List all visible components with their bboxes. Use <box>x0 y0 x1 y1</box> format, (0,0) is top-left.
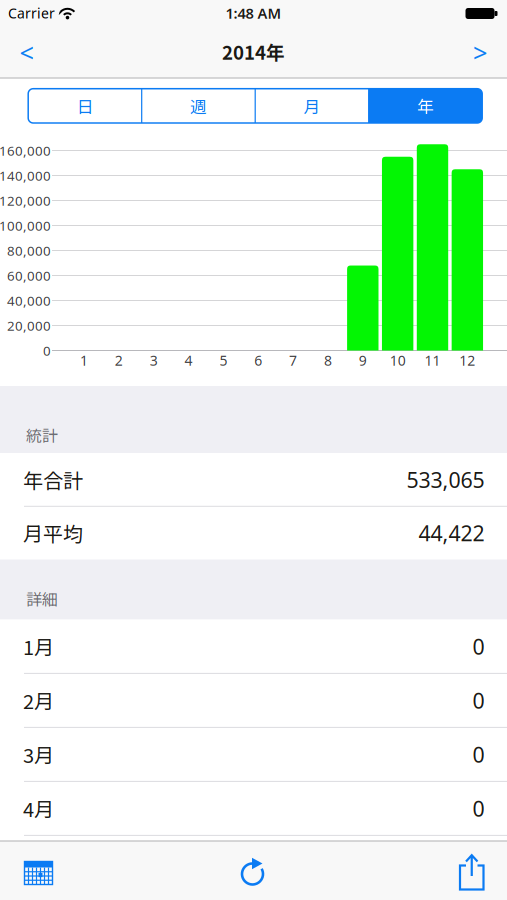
button[interactable]: Previous year <box>4 30 48 74</box>
staticText: 160,000 <box>0 141 51 160</box>
staticText: 60,000 <box>7 266 51 285</box>
staticText: 年 <box>417 94 434 118</box>
button[interactable]: Calendar <box>16 851 60 895</box>
staticText: 0 <box>472 740 484 769</box>
staticText: 0 <box>43 341 51 360</box>
button[interactable]: 日 <box>28 89 142 123</box>
staticText: 8 <box>324 351 332 370</box>
button[interactable]: 月 <box>255 89 369 123</box>
staticText: 4 <box>185 351 193 370</box>
staticText: < <box>19 35 33 70</box>
staticText: 12 <box>459 351 475 370</box>
staticText: 7 <box>289 351 297 370</box>
button[interactable]: 週 <box>142 89 255 123</box>
staticText: 0 <box>472 794 484 823</box>
staticText: 0 <box>472 686 484 715</box>
staticText: 3月 <box>23 740 54 769</box>
staticText: 2月 <box>23 686 54 715</box>
staticText: 6 <box>254 351 262 370</box>
staticText: 1月 <box>23 632 54 661</box>
staticText: 0 <box>472 632 484 661</box>
staticText: 5月 <box>23 848 54 877</box>
staticText: 年合計 <box>23 465 83 494</box>
staticText: 詳細 <box>26 587 58 610</box>
staticText: 日 <box>76 94 93 118</box>
staticText: 週 <box>190 94 207 118</box>
staticText: > <box>473 35 487 70</box>
staticText: 0 <box>472 848 484 877</box>
button[interactable]: 年 <box>369 89 482 123</box>
staticText: 2 <box>115 351 123 370</box>
staticText: 月平均 <box>23 518 83 547</box>
staticText: 100,000 <box>0 216 51 235</box>
staticText: 1:48 AM <box>225 3 281 23</box>
staticText: Carrier <box>8 3 55 23</box>
staticText: 統計 <box>26 423 58 446</box>
staticText: 44,422 <box>418 518 484 547</box>
staticText: 2014年 <box>222 38 285 65</box>
staticText: 20,000 <box>7 316 51 335</box>
button[interactable]: Share <box>449 850 493 894</box>
staticText: 11 <box>424 351 440 370</box>
button[interactable]: Next year <box>458 30 502 74</box>
staticText: 3 <box>150 351 158 370</box>
staticText: 80,000 <box>7 241 51 260</box>
staticText: 月 <box>303 94 320 118</box>
staticText: 1 <box>80 351 88 370</box>
staticText: 140,000 <box>0 166 51 185</box>
staticText: 40,000 <box>7 291 51 310</box>
staticText: 5 <box>219 351 227 370</box>
staticText: 9 <box>359 351 367 370</box>
button[interactable]: Refresh <box>230 850 274 894</box>
staticText: 120,000 <box>0 191 51 210</box>
staticText: 10 <box>390 351 406 370</box>
staticText: 533,065 <box>406 465 484 494</box>
staticText: 4月 <box>23 794 54 823</box>
